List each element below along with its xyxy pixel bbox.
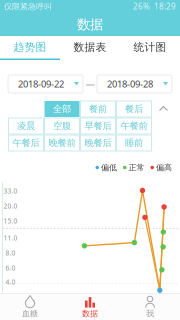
staticText: 空腹: [53, 120, 71, 132]
staticText: 午餐后: [12, 137, 39, 149]
button[interactable]: 统计图: [120, 36, 180, 60]
staticText: 2018-09-28: [107, 78, 153, 90]
staticText: 偏低: [101, 163, 117, 172]
staticText: 偏高: [156, 163, 172, 172]
button[interactable]: 空腹: [44, 118, 79, 134]
button[interactable]: 睡前: [116, 135, 151, 151]
staticText: 统计图: [133, 41, 166, 54]
staticText: 8.0: [5, 249, 15, 257]
staticText: 我: [146, 309, 154, 318]
button[interactable]: 血糖: [0, 294, 60, 320]
button[interactable]: 早餐后: [80, 118, 115, 134]
staticText: 26%: [133, 1, 150, 12]
button[interactable]: 2018-09-22: [8, 75, 83, 93]
staticText: 4.0: [5, 278, 15, 286]
staticText: 数据表: [73, 41, 106, 54]
staticText: 全部: [53, 103, 71, 115]
staticText: 18:29: [150, 1, 176, 12]
staticText: 趋势图: [13, 41, 46, 54]
button[interactable]: 我: [120, 294, 180, 320]
staticText: 15.0: [3, 217, 17, 225]
staticText: 血糖: [22, 309, 38, 318]
button[interactable]: 午餐前: [116, 118, 151, 134]
button[interactable]: 2018-09-28: [97, 75, 172, 93]
button[interactable]: 凌晨: [8, 118, 43, 134]
staticText: 早餐后: [84, 120, 111, 132]
staticText: 凌晨: [17, 120, 35, 132]
staticText: 6.0: [5, 264, 15, 272]
staticText: 数据: [82, 309, 98, 318]
staticText: 晚餐前: [48, 137, 75, 149]
button[interactable]: 全部: [44, 101, 79, 117]
button[interactable]: 收起: [152, 101, 174, 117]
staticText: 餐前: [89, 103, 107, 115]
staticText: 正常: [128, 163, 144, 172]
staticText: 11.0: [3, 234, 17, 242]
button[interactable]: 数据: [60, 294, 120, 320]
button[interactable]: 晚餐前: [44, 135, 79, 151]
staticText: 餐后: [125, 103, 143, 115]
staticText: 午餐前: [120, 120, 147, 132]
button[interactable]: 午餐后: [8, 135, 43, 151]
staticText: 2018-09-22: [18, 78, 64, 90]
staticText: 仅限紧急呼叫: [4, 2, 52, 11]
button[interactable]: 餐前: [80, 101, 115, 117]
button[interactable]: 趋势图: [0, 36, 60, 60]
staticText: 20.0: [3, 202, 17, 210]
staticText: 数据: [77, 16, 103, 33]
staticText: 33.0: [3, 187, 17, 195]
staticText: 晚餐后: [84, 137, 111, 149]
staticText: 睡前: [125, 137, 143, 149]
button[interactable]: 数据表: [60, 36, 120, 60]
button[interactable]: 晚餐后: [80, 135, 115, 151]
button[interactable]: 餐后: [116, 101, 151, 117]
staticText: —: [85, 78, 94, 90]
